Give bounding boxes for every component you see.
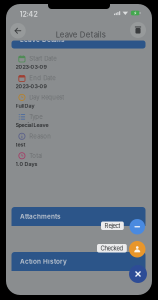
staticText: Attachments	[20, 213, 61, 220]
staticText: Special Leave	[16, 122, 49, 128]
staticText: 12:42	[19, 10, 37, 18]
staticText: Leave Details	[20, 36, 65, 44]
staticText: End Date	[29, 74, 55, 82]
staticText: Full Day	[16, 102, 35, 109]
staticText: 2023-03-09	[16, 83, 47, 90]
staticText: Checked	[100, 245, 123, 252]
button[interactable]: Back	[10, 23, 26, 38]
staticText: test	[16, 141, 26, 148]
staticText: Total	[29, 152, 42, 159]
staticText: Type	[29, 113, 42, 120]
staticText: 2023-03-09	[16, 64, 47, 70]
button[interactable]: Delete	[130, 22, 146, 38]
button[interactable]: Close actions menu	[129, 265, 147, 283]
staticText: Reject	[104, 222, 120, 229]
staticText: Reason	[29, 133, 51, 140]
staticText: Action History	[20, 258, 67, 265]
button[interactable]: Reject	[129, 219, 145, 234]
staticText: 1.0 Days	[16, 161, 38, 167]
staticText: Day Request	[29, 94, 64, 101]
staticText: Leave Details	[56, 30, 106, 39]
staticText: Start Date	[29, 55, 56, 62]
button[interactable]: Check	[129, 241, 145, 257]
